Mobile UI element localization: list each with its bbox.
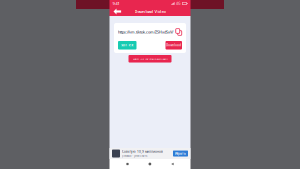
staticText: реклама · установить [122,154,147,158]
button[interactable]: Recents [123,160,132,168]
staticText: Watch Ad For Free Downloads [132,57,167,60]
staticText: https://vm.tiktok.com/ZSHxdSxV/ [118,29,173,35]
button[interactable]: Download [165,41,182,49]
staticText: 9:41 [112,1,119,6]
staticText: Играть [175,151,186,156]
staticText: Scan Text [121,43,133,47]
button[interactable]: Watch Ad For Free Downloads [128,55,171,62]
staticText: Download [166,43,181,47]
button[interactable]: Paste link [175,28,182,35]
staticText: Советую 10,9 миллионов [122,149,163,154]
button[interactable]: Back [168,160,177,168]
staticText: Download Video [134,9,165,14]
staticText: 4G [176,1,181,6]
button[interactable]: Scan Text [118,41,136,49]
button[interactable]: Home [145,160,154,168]
button[interactable]: Back [109,7,124,16]
button[interactable]: Играть [173,150,188,156]
